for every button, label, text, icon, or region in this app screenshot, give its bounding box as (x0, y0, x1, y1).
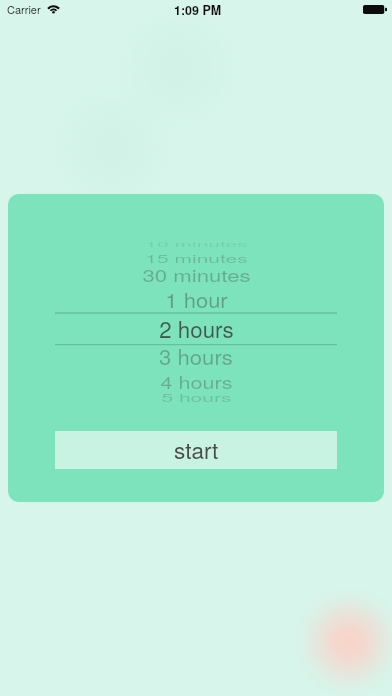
button[interactable]: 10 minutes (8, 228, 384, 260)
other: Wi-Fi signal (48, 5, 59, 14)
other: Battery full (363, 5, 387, 14)
staticText: 30 minutes (142, 262, 251, 287)
button[interactable]: 15 minutes (8, 242, 384, 274)
button[interactable]: 2 hours (8, 312, 384, 344)
button[interactable]: 4 hours (8, 365, 384, 397)
staticText: 2 hours (159, 312, 234, 344)
button[interactable]: 30 minutes (8, 259, 384, 291)
button[interactable]: 3 hours (8, 340, 384, 372)
staticText: 1:09 PM (174, 1, 222, 19)
button[interactable]: start (55, 431, 337, 469)
staticText: 3 hours (159, 341, 233, 371)
button[interactable]: 1 hour (8, 284, 384, 316)
staticText: 1 hour (165, 285, 228, 315)
button[interactable]: 5 hours (8, 381, 384, 413)
staticText: 4 hours (160, 369, 233, 394)
staticText: Carrier (7, 1, 41, 17)
staticText: 5 hours (161, 389, 232, 404)
staticText: 15 minutes (145, 250, 248, 266)
staticText: 10 minutes (145, 239, 248, 248)
staticText: start (174, 433, 219, 465)
